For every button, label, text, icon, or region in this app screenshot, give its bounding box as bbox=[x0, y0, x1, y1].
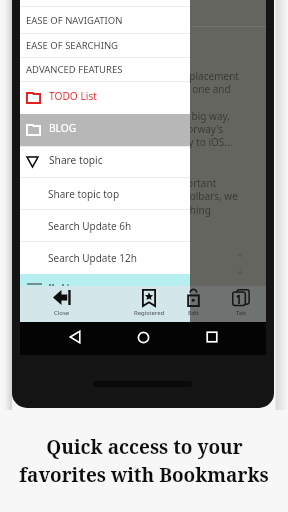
button[interactable]: Edit bbox=[173, 286, 213, 322]
button[interactable]: EASE OF SEARCHING bbox=[20, 33, 190, 57]
staticText: Share topic bbox=[49, 153, 103, 167]
staticText: Search Update 12h bbox=[48, 251, 137, 265]
button[interactable]: Search Update 12h bbox=[20, 241, 190, 273]
staticText: + bbox=[237, 247, 244, 262]
staticText: important bbox=[169, 176, 217, 190]
button[interactable]: Close bbox=[42, 286, 82, 322]
staticText: for the one and bbox=[158, 82, 231, 96]
button[interactable]: BLOG bbox=[20, 114, 190, 146]
staticText: Edit bbox=[188, 309, 199, 317]
staticText: TODO List bbox=[49, 89, 97, 103]
button[interactable]: Back bbox=[69, 330, 81, 344]
button[interactable] bbox=[20, 274, 190, 286]
button[interactable]: Home bbox=[137, 331, 150, 344]
staticText: ADVANCED FEATURES bbox=[26, 63, 123, 76]
staticText: doorway's bbox=[175, 122, 224, 136]
staticText: the toolbars, we bbox=[162, 189, 238, 203]
staticText: Search Update 6h bbox=[48, 219, 132, 233]
staticText: in a big way, bbox=[172, 109, 230, 123]
button[interactable]: Registered bbox=[129, 286, 169, 322]
staticText: way to iOS... bbox=[175, 135, 233, 149]
staticText: nice replacement bbox=[158, 69, 239, 83]
staticText: + bbox=[237, 264, 244, 279]
button[interactable]: ADVANCED FEATURES bbox=[20, 57, 190, 81]
staticText: EASE OF NAVIGATION bbox=[26, 14, 123, 27]
button[interactable]: TODO List bbox=[20, 81, 190, 114]
staticText: Close bbox=[54, 309, 70, 317]
button[interactable]: EASE OF NAVIGATION bbox=[20, 6, 190, 33]
staticText: Registered bbox=[134, 309, 165, 317]
button[interactable]: Share topic top bbox=[20, 177, 190, 209]
staticText: nothing bbox=[174, 203, 211, 217]
staticText: Quick access to your bbox=[46, 434, 243, 460]
staticText: Tab bbox=[236, 309, 246, 317]
button[interactable]: Search Update 6h bbox=[20, 209, 190, 241]
button[interactable]: Share topic bbox=[20, 146, 190, 177]
staticText: BLOG bbox=[49, 121, 77, 135]
button[interactable]: Recent apps bbox=[206, 331, 218, 343]
button[interactable]: Tab bbox=[221, 286, 261, 322]
staticText: EASE OF SEARCHING bbox=[26, 39, 119, 52]
staticText: favorites with Bookmarks bbox=[19, 462, 269, 488]
staticText: Share topic top bbox=[48, 187, 120, 201]
